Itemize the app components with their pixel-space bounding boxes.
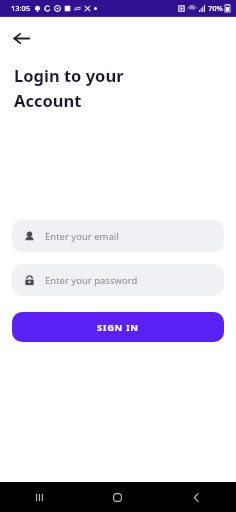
staticText: 70% bbox=[208, 3, 223, 13]
button[interactable]: Home bbox=[78, 482, 157, 512]
staticText: Enter your email bbox=[45, 230, 119, 243]
button[interactable]: Recents bbox=[0, 482, 78, 512]
staticText: Enter your password bbox=[45, 274, 138, 287]
button[interactable]: Enter your email bbox=[12, 220, 224, 252]
staticText: 13:05 bbox=[11, 3, 31, 13]
button[interactable]: Enter your password bbox=[12, 264, 224, 296]
button[interactable]: SIGN IN bbox=[12, 312, 224, 342]
staticText: Account bbox=[14, 89, 82, 111]
staticText: SIGN IN bbox=[97, 321, 139, 334]
button[interactable]: Back bbox=[157, 482, 236, 512]
staticText: Login to your bbox=[14, 64, 124, 86]
button[interactable]: Back bbox=[6, 23, 36, 53]
